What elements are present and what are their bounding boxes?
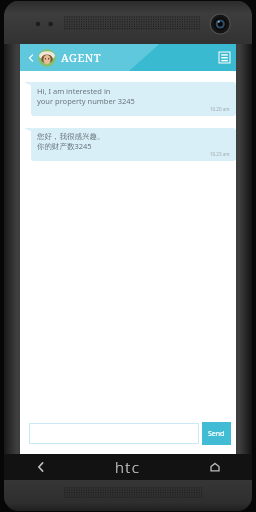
staticText: htc [115, 457, 141, 477]
staticText: Hi, I am interested in [37, 86, 111, 96]
button[interactable]: Message input [29, 423, 199, 444]
staticText: AGENT [61, 50, 101, 65]
button[interactable]: Back [4, 454, 78, 480]
staticText: 10.23 am [210, 151, 230, 157]
button[interactable]: Home [178, 454, 252, 480]
button[interactable]: 您好，我很感兴趣。 [31, 128, 236, 161]
button[interactable]: Menu [217, 50, 232, 65]
button[interactable]: Hi, I am interested in [31, 82, 236, 116]
staticText: 你的财产数3245 [37, 141, 92, 151]
button[interactable]: Agent avatar [38, 49, 56, 67]
staticText: 10.20 am [210, 106, 230, 112]
staticText: your property number 3245 [37, 96, 135, 106]
button[interactable]: Back [25, 52, 37, 64]
staticText: Send [208, 429, 225, 439]
staticText: 您好，我很感兴趣。 [37, 132, 105, 141]
button[interactable]: Send [202, 422, 231, 445]
